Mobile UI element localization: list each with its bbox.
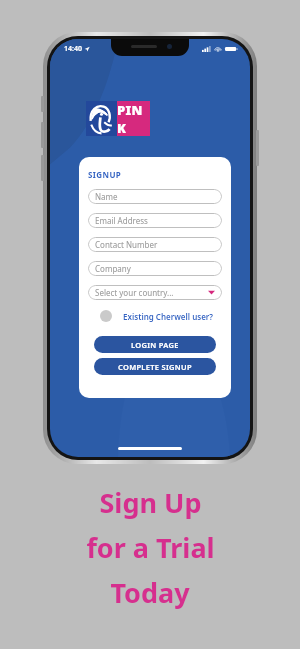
button[interactable]: Name xyxy=(88,189,222,204)
staticText: Existing Cherwell user? xyxy=(123,311,214,322)
button[interactable]: Company xyxy=(88,261,222,276)
staticText: COMPLETE SIGNUP xyxy=(118,362,192,372)
staticText: Today xyxy=(110,574,190,611)
button[interactable]: Email Address xyxy=(88,213,222,228)
staticText: Select your country... xyxy=(95,287,174,298)
button[interactable]: Select your country... xyxy=(88,285,222,300)
button[interactable]: COMPLETE SIGNUP xyxy=(94,358,216,375)
staticText: Contact Number xyxy=(95,239,158,250)
staticText: Email Address xyxy=(95,215,148,226)
staticText: LOGIN PAGE xyxy=(131,340,179,350)
staticText: Sign Up xyxy=(99,484,202,521)
staticText: Name xyxy=(95,191,118,202)
staticText: Company xyxy=(95,263,131,274)
button[interactable]: LOGIN PAGE xyxy=(94,336,216,353)
staticText: SIGNUP xyxy=(88,169,122,180)
staticText: 14:40 xyxy=(64,44,82,54)
button[interactable]: Contact Number xyxy=(88,237,222,252)
staticText: PINK xyxy=(117,101,150,136)
staticText: for a Trial xyxy=(86,529,215,566)
button[interactable]: Existing Cherwell user? xyxy=(88,310,222,322)
